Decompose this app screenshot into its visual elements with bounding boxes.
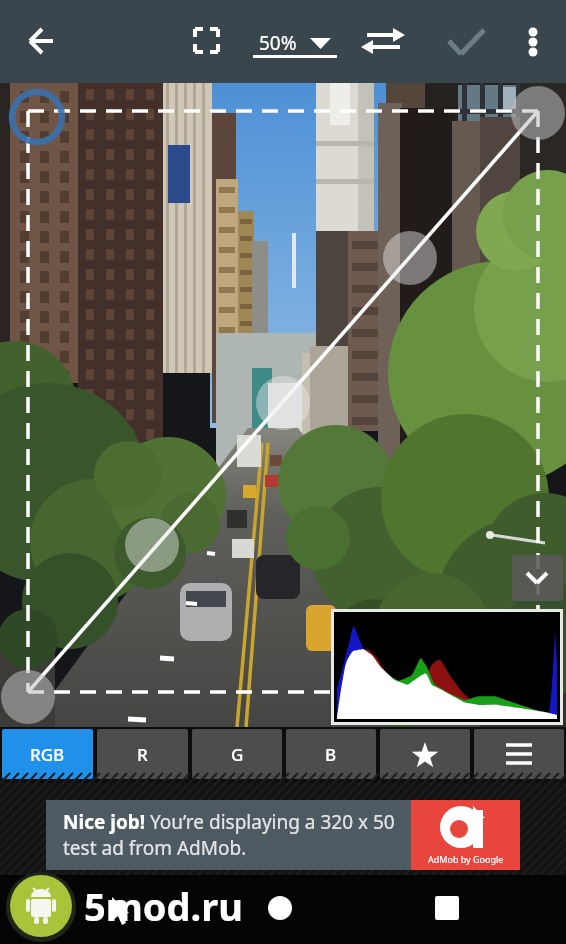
staticText: test ad from AdMob. bbox=[63, 835, 247, 861]
staticText: RGB bbox=[30, 743, 65, 766]
staticText: 50% bbox=[259, 30, 297, 56]
staticText: 5mod.ru bbox=[84, 880, 243, 932]
staticText: Nice job! You’re displaying a 320 x 50 bbox=[63, 809, 395, 835]
staticText: B bbox=[325, 743, 337, 766]
staticText: G bbox=[231, 743, 244, 766]
staticText: AdMob by Google bbox=[428, 853, 504, 865]
staticText: R bbox=[137, 743, 148, 766]
